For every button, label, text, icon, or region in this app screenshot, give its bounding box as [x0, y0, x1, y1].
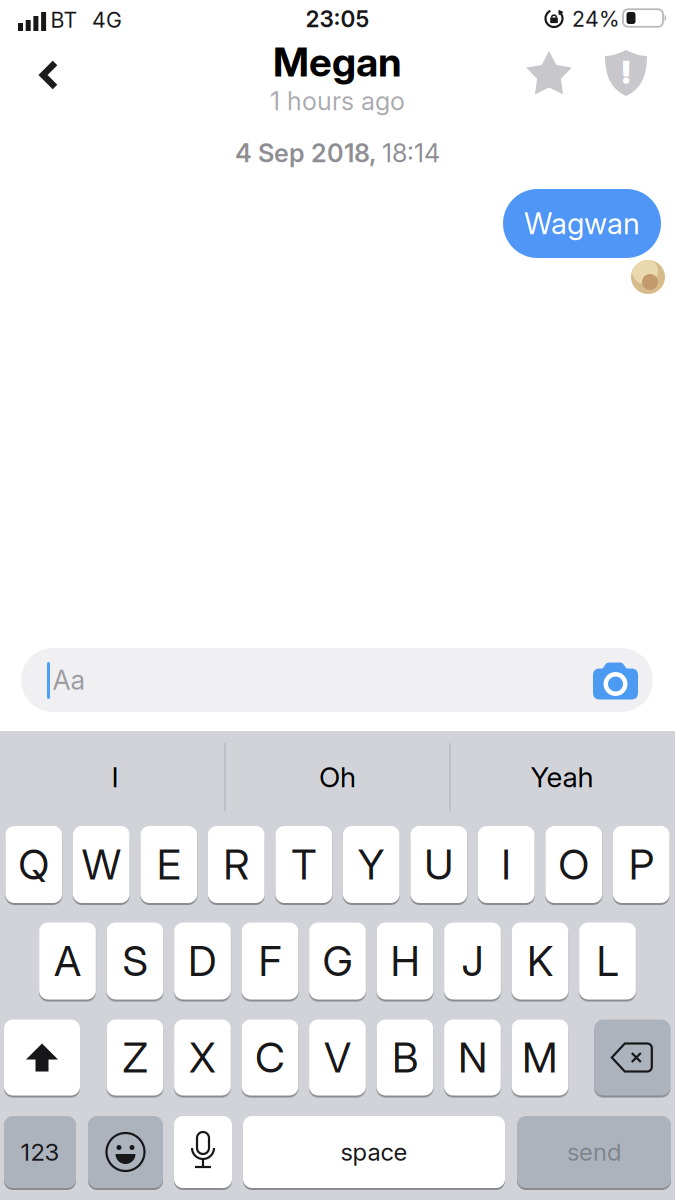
- button[interactable]: B: [377, 1019, 433, 1095]
- button[interactable]: S: [107, 922, 163, 999]
- staticText: Z: [122, 1033, 147, 1082]
- staticText: V: [324, 1033, 351, 1082]
- button[interactable]: Oh: [230, 734, 445, 820]
- button[interactable]: E: [140, 826, 197, 903]
- staticText: U: [424, 840, 453, 889]
- button[interactable]: A: [39, 922, 96, 999]
- staticText: E: [157, 840, 181, 889]
- button[interactable]: Report: [597, 42, 655, 104]
- button[interactable]: X: [174, 1019, 231, 1095]
- staticText: Aa: [52, 664, 85, 696]
- button[interactable]: K: [512, 922, 568, 999]
- staticText: 123: [20, 1138, 59, 1166]
- staticText: Megan: [273, 38, 402, 86]
- staticText: send: [567, 1138, 621, 1166]
- button[interactable]: Camera: [587, 656, 644, 705]
- button[interactable]: Back: [27, 48, 72, 102]
- button[interactable]: Dictation: [174, 1116, 232, 1188]
- staticText: M: [522, 1033, 558, 1082]
- button[interactable]: Q: [5, 826, 62, 903]
- button[interactable]: I: [478, 826, 535, 903]
- button[interactable]: H: [377, 922, 433, 999]
- button[interactable]: Favorite: [518, 43, 580, 105]
- staticText: O: [558, 840, 589, 889]
- button[interactable]: Shift: [4, 1019, 80, 1095]
- staticText: 4 Sep 2018,: [235, 138, 376, 168]
- staticText: G: [322, 937, 352, 985]
- staticText: P: [629, 840, 654, 889]
- staticText: K: [527, 937, 553, 985]
- button[interactable]: N: [444, 1019, 501, 1095]
- staticText: L: [596, 937, 618, 985]
- staticText: !: [621, 53, 631, 91]
- staticText: Yeah: [530, 760, 593, 793]
- staticText: 23:05: [305, 6, 369, 32]
- staticText: C: [255, 1033, 285, 1082]
- button[interactable]: G: [309, 922, 366, 999]
- button[interactable]: Delete: [594, 1019, 670, 1095]
- staticText: Oh: [319, 760, 356, 793]
- button[interactable]: U: [410, 826, 467, 903]
- staticText: Q: [18, 840, 49, 889]
- staticText: X: [189, 1033, 216, 1082]
- button[interactable]: V: [309, 1019, 366, 1095]
- staticText: space: [340, 1138, 407, 1166]
- button[interactable]: Emoji: [88, 1116, 163, 1188]
- button[interactable]: space: [243, 1116, 505, 1188]
- staticText: H: [390, 937, 419, 985]
- button[interactable]: W: [73, 826, 130, 903]
- staticText: N: [458, 1033, 487, 1082]
- button[interactable]: O: [545, 826, 602, 903]
- button[interactable]: F: [242, 922, 298, 999]
- staticText: D: [188, 937, 217, 985]
- staticText: F: [258, 937, 281, 985]
- button[interactable]: Y: [343, 826, 400, 903]
- staticText: B: [392, 1033, 418, 1082]
- button[interactable]: I: [7, 734, 222, 820]
- staticText: 18:14: [382, 138, 440, 168]
- staticText: Wagwan: [524, 206, 640, 241]
- button[interactable]: Z: [107, 1019, 163, 1095]
- button[interactable]: J: [444, 922, 501, 999]
- staticText: 24%: [572, 6, 620, 32]
- button[interactable]: 123: [4, 1116, 76, 1188]
- button[interactable]: T: [275, 826, 332, 903]
- button[interactable]: R: [208, 826, 265, 903]
- button[interactable]: send: [517, 1116, 671, 1188]
- staticText: 1 hours ago: [270, 86, 405, 116]
- button[interactable]: Yeah: [454, 734, 669, 820]
- staticText: T: [291, 840, 316, 889]
- staticText: A: [54, 937, 81, 985]
- staticText: 4G: [92, 7, 122, 33]
- button[interactable]: L: [579, 922, 636, 999]
- staticText: Y: [358, 840, 385, 889]
- staticText: S: [122, 937, 147, 985]
- staticText: W: [82, 840, 121, 889]
- button[interactable]: P: [613, 826, 670, 903]
- staticText: J: [461, 937, 483, 985]
- button[interactable]: C: [242, 1019, 298, 1095]
- staticText: BT: [50, 7, 77, 33]
- staticText: R: [223, 840, 249, 889]
- button[interactable]: D: [174, 922, 231, 999]
- button[interactable]: M: [512, 1019, 568, 1095]
- staticText: I: [501, 840, 511, 889]
- staticText: I: [111, 760, 118, 793]
